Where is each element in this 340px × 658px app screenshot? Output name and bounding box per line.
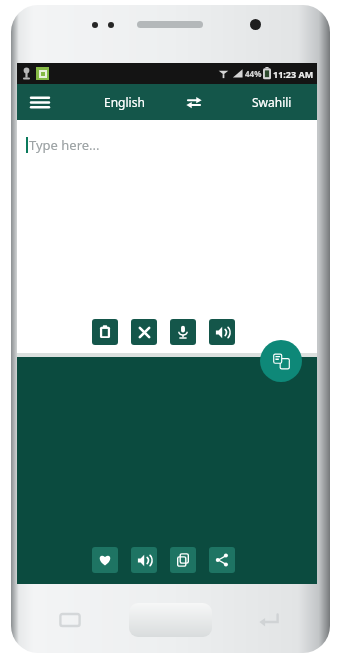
button[interactable]: Clear text: [131, 319, 157, 345]
button[interactable]: Paste from clipboard: [92, 319, 118, 345]
button[interactable]: Translate: [260, 340, 302, 382]
button[interactable]: Swap languages: [175, 84, 213, 120]
staticText: Type here...: [29, 136, 100, 154]
button[interactable]: Copy translation: [170, 547, 196, 573]
staticText: English: [104, 94, 145, 110]
staticText: 11:23 AM: [273, 68, 314, 80]
button[interactable]: Swahili: [231, 84, 313, 120]
staticText: Swahili: [252, 94, 292, 110]
staticText: 44%: [245, 68, 262, 79]
button[interactable]: English: [85, 84, 163, 120]
button[interactable]: Share translation: [209, 547, 235, 573]
button[interactable]: Speak source text: [209, 319, 235, 345]
button[interactable]: Voice input: [170, 319, 196, 345]
button[interactable]: Open navigation menu: [21, 84, 59, 120]
button[interactable]: Speak translation: [131, 547, 157, 573]
button[interactable]: Add to favorites: [92, 547, 118, 573]
